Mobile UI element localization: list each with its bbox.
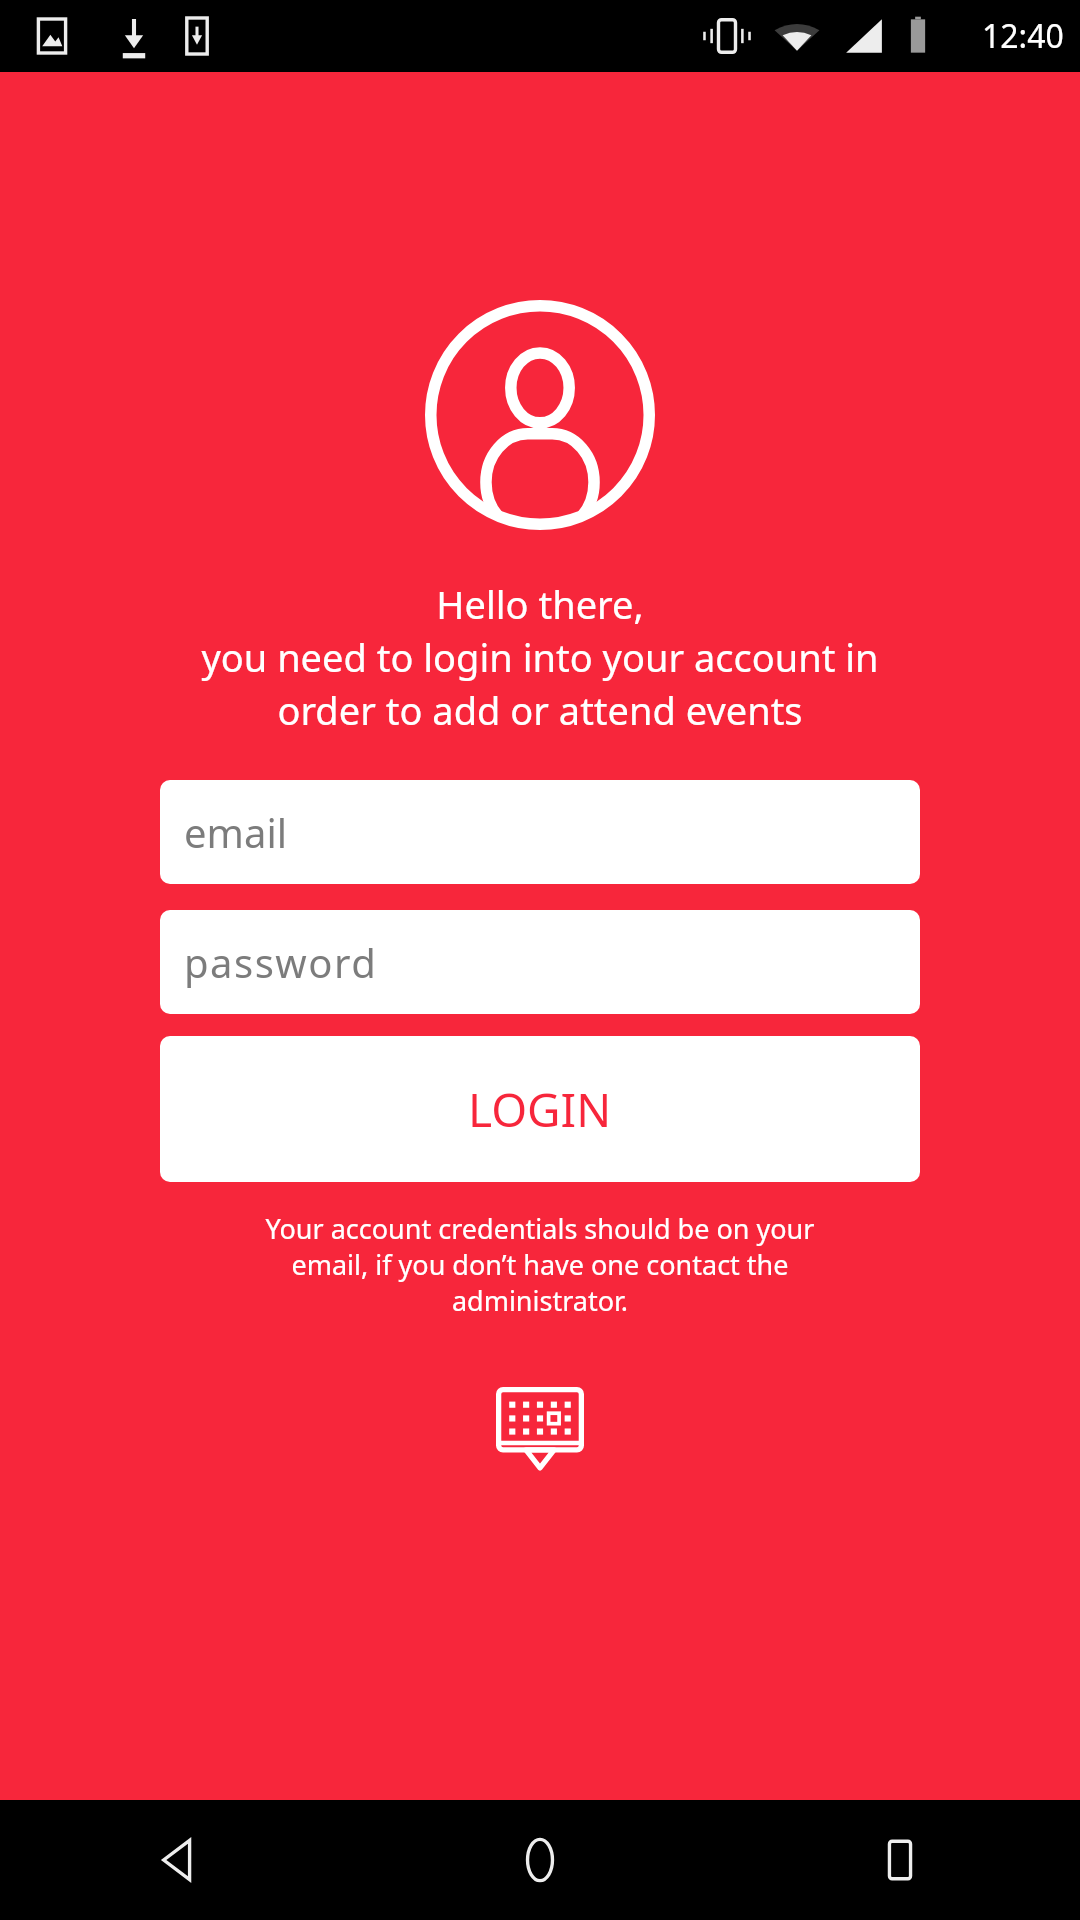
button[interactable]: password [160, 910, 920, 1014]
button[interactable]: email [160, 780, 920, 884]
button[interactable]: Back [0, 1800, 360, 1920]
staticText: Hello there, you need to login into your… [14, 578, 1066, 736]
button[interactable]: Hide keyboard [485, 1379, 595, 1479]
staticText: password [184, 935, 378, 989]
staticText: Your account credentials should be on yo… [180, 1210, 900, 1319]
staticText: 12:40 [982, 14, 1064, 58]
staticText: email [184, 805, 288, 859]
button[interactable]: LOGIN [160, 1036, 920, 1182]
staticText: LOGIN [468, 1078, 612, 1141]
button[interactable]: Recent apps [720, 1800, 1080, 1920]
button[interactable]: Home [360, 1800, 720, 1920]
